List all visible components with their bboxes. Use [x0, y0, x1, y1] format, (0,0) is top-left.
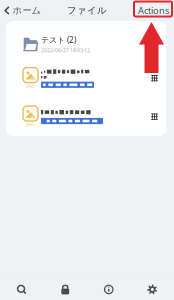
- button[interactable]: Search: [0, 279, 43, 300]
- staticText: JPEG: [26, 84, 34, 89]
- button[interactable]: ホーム: [0, 1, 41, 20]
- staticText: JPEG: [26, 122, 34, 127]
- staticText: ホーム: [12, 5, 41, 16]
- button[interactable]: Actions: [138, 0, 174, 21]
- staticText: 2022/06/27 18:03:12: [41, 47, 90, 54]
- button[interactable]: Locked: [43, 279, 87, 300]
- button[interactable]: テスト (2): [6, 21, 166, 59]
- staticText: テスト (2): [41, 34, 76, 45]
- button[interactable]: Info: [87, 279, 130, 300]
- staticText: Actions: [138, 4, 169, 17]
- button[interactable]: JPEG: [6, 59, 166, 97]
- button[interactable]: JPEG: [6, 97, 166, 136]
- staticText: ファイル: [67, 5, 107, 16]
- button[interactable]: Settings: [130, 279, 174, 300]
